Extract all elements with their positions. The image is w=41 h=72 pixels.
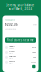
staticText: Detail: [33, 24, 36, 26]
staticText: as of Mar 6, 2024: [8, 7, 32, 11]
staticText: -18.05: [32, 51, 36, 53]
staticText: Mar 4: [9, 57, 13, 59]
staticText: 232.35: [31, 61, 36, 63]
button[interactable]: Scan card: [32, 65, 35, 68]
staticText: Mar 1: [9, 62, 13, 64]
staticText: Jeremy, your balance: [6, 3, 34, 7]
staticText: Food balance: [5, 19, 15, 21]
staticText: Kroger: [9, 51, 15, 52]
staticText: Today: [9, 47, 14, 49]
staticText: Deposit: [9, 60, 14, 62]
staticText: -7.49: [33, 56, 36, 58]
staticText: Mar 5: [9, 52, 13, 54]
button[interactable]: Find stores near me: [5, 37, 36, 43]
staticText: Find stores near me: [7, 38, 34, 42]
staticText: -42.18: [32, 47, 36, 48]
staticText: Updated just now: [5, 28, 16, 30]
staticText: Dollar Gen: [9, 56, 16, 57]
staticText: $232.35: [5, 23, 18, 26]
staticText: Walmart: [9, 46, 14, 47]
